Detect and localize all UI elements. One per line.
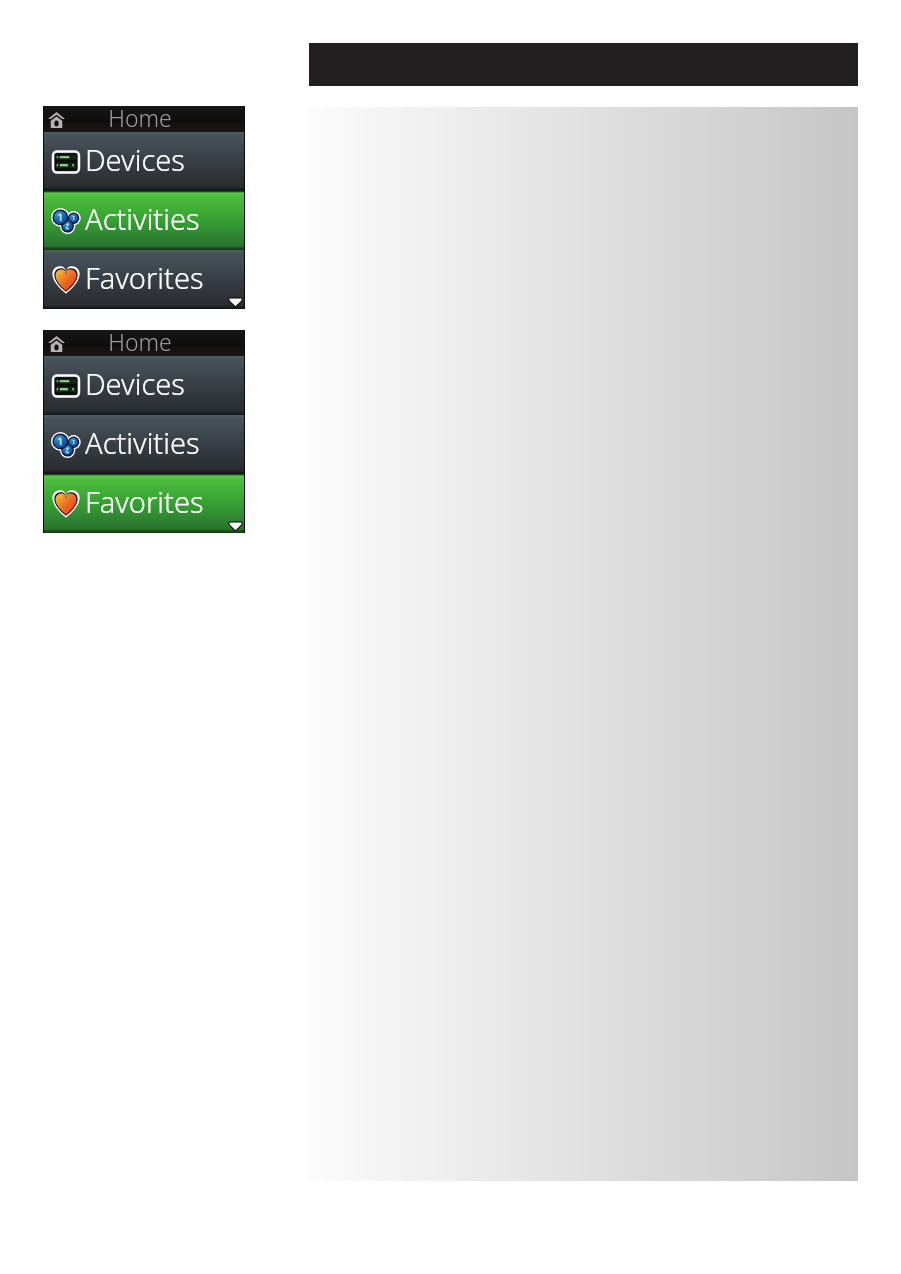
button[interactable]: Activities: [44, 415, 244, 474]
staticText: Devices: [85, 364, 185, 403]
staticText: Home: [65, 102, 215, 128]
staticText: Activities: [85, 423, 200, 462]
button[interactable]: Devices: [44, 356, 244, 415]
button[interactable]: Favorites: [44, 474, 244, 533]
staticText: Favorites: [85, 258, 204, 297]
button[interactable]: Favorites: [44, 250, 244, 309]
button[interactable]: Scroll down for more: [229, 298, 242, 306]
staticText: Favorites: [85, 482, 204, 521]
other: Home: [48, 111, 65, 128]
button[interactable]: Home: [44, 330, 244, 356]
button[interactable]: Home: [44, 106, 244, 132]
button[interactable]: Devices: [44, 132, 244, 191]
other: Home: [48, 335, 65, 352]
staticText: Home: [65, 326, 215, 352]
button[interactable]: Activities: [44, 191, 244, 250]
staticText: Activities: [85, 199, 200, 238]
staticText: Devices: [85, 140, 185, 179]
button[interactable]: Scroll down for more: [229, 522, 242, 530]
